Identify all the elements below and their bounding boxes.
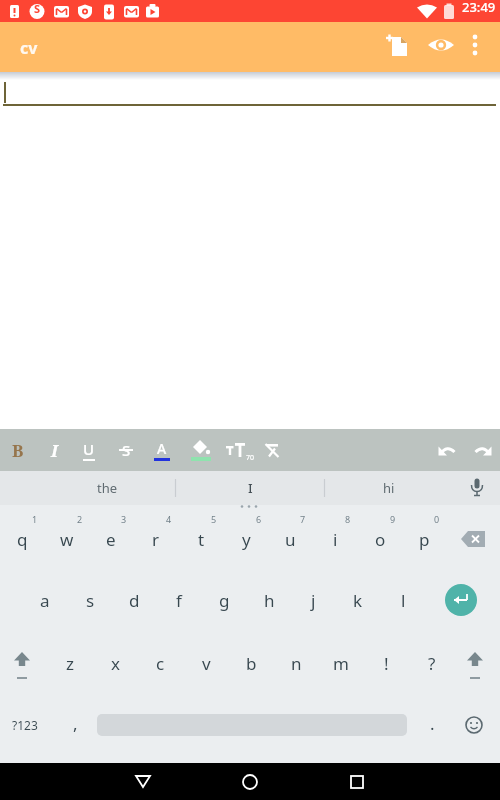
button[interactable] (453, 635, 497, 691)
button[interactable]: u (268, 511, 312, 567)
staticText: y (242, 528, 251, 551)
button[interactable]: ? (410, 635, 454, 691)
staticText: j (311, 589, 316, 612)
staticText: 2 (77, 513, 83, 525)
button[interactable]: , (53, 695, 97, 751)
staticText: c (156, 652, 165, 675)
staticText: n (291, 652, 302, 675)
button[interactable]: o (358, 511, 402, 567)
staticText: p (419, 528, 430, 551)
button[interactable]: k (336, 572, 380, 628)
button[interactable]: a (23, 572, 67, 628)
button[interactable] (0, 635, 44, 691)
staticText: 4 (166, 513, 172, 525)
button[interactable] (451, 511, 495, 567)
staticText: 70 (246, 453, 255, 463)
staticText: 6 (256, 513, 262, 525)
button[interactable]: e (89, 511, 133, 567)
button[interactable]: r (134, 511, 178, 567)
button[interactable] (384, 31, 412, 59)
staticText: f (176, 589, 182, 612)
staticText: i (333, 528, 338, 551)
button[interactable] (452, 697, 496, 753)
button[interactable]: f (157, 572, 201, 628)
staticText: b (246, 652, 257, 675)
button[interactable]: j (291, 572, 335, 628)
staticText: a (40, 589, 50, 612)
staticText: S (34, 1, 41, 16)
button[interactable]: d (112, 572, 156, 628)
button[interactable]: I (176, 471, 324, 505)
staticText: r (152, 528, 160, 551)
button[interactable] (461, 31, 489, 59)
button[interactable]: y (224, 511, 268, 567)
staticText: 0 (434, 513, 440, 525)
staticText: g (219, 589, 230, 612)
button[interactable]: q (0, 511, 44, 567)
button[interactable]: A (145, 433, 179, 467)
button[interactable]: v (184, 635, 228, 691)
staticText: s (86, 589, 95, 612)
staticText: x (111, 652, 120, 675)
button[interactable]: z (48, 635, 92, 691)
button[interactable] (255, 433, 289, 467)
button[interactable]: . (410, 695, 454, 751)
button[interactable]: 70 (221, 433, 255, 467)
staticText: e (106, 528, 116, 551)
staticText: B (12, 439, 24, 462)
button[interactable]: U (72, 433, 106, 467)
staticText: . (430, 712, 435, 735)
button[interactable]: hi (326, 471, 451, 505)
staticText: I (248, 479, 253, 497)
staticText: k (353, 589, 363, 612)
button[interactable] (430, 433, 464, 467)
button[interactable]: I (37, 433, 71, 467)
staticText: ? (428, 652, 436, 675)
staticText: 23:49 (462, 0, 496, 16)
button[interactable] (439, 578, 483, 622)
button[interactable]: the (40, 471, 175, 505)
button[interactable]: B (1, 433, 35, 467)
staticText: d (129, 589, 140, 612)
staticText: v (202, 652, 211, 675)
staticText: S (122, 440, 131, 460)
button[interactable]: p (402, 511, 446, 567)
button[interactable] (184, 433, 218, 467)
button[interactable]: i (313, 511, 357, 567)
staticText: z (66, 652, 74, 675)
button[interactable]: b (229, 635, 273, 691)
staticText: m (333, 652, 349, 675)
button[interactable]: t (179, 511, 223, 567)
staticText: t (198, 528, 205, 551)
staticText: ! (384, 652, 389, 675)
staticText: , (73, 712, 78, 735)
button[interactable]: l (381, 572, 425, 628)
staticText: A (157, 439, 167, 458)
button[interactable] (333, 763, 381, 800)
staticText: ?123 (12, 717, 38, 733)
button[interactable]: m (319, 635, 363, 691)
button[interactable] (119, 763, 167, 800)
button[interactable]: w (45, 511, 89, 567)
staticText: w (60, 528, 74, 551)
staticText: h (264, 589, 275, 612)
staticText: 3 (121, 513, 127, 525)
button[interactable]: s (68, 572, 112, 628)
button[interactable] (463, 474, 491, 502)
button[interactable]: S (109, 433, 143, 467)
staticText: l (401, 589, 406, 612)
button[interactable]: x (93, 635, 137, 691)
button[interactable]: ! (364, 635, 408, 691)
button[interactable]: c (138, 635, 182, 691)
button[interactable]: h (247, 572, 291, 628)
staticText: 7 (300, 513, 306, 525)
button[interactable] (466, 433, 500, 467)
staticText: 9 (390, 513, 396, 525)
staticText: o (375, 528, 386, 551)
button[interactable]: ?123 (2, 697, 48, 753)
button[interactable]: n (274, 635, 318, 691)
button[interactable] (226, 763, 274, 800)
button[interactable] (427, 31, 455, 59)
button[interactable]: g (202, 572, 246, 628)
